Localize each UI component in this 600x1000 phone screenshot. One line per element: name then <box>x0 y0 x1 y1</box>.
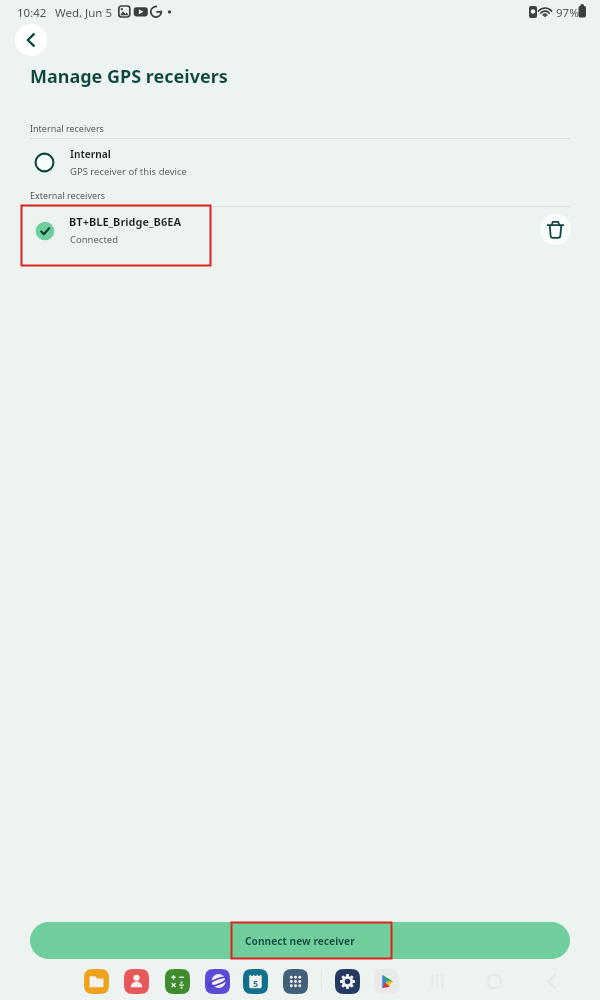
button[interactable]: Contacts <box>124 969 149 994</box>
staticText: External receivers <box>30 189 106 201</box>
button[interactable]: Delete <box>540 214 571 245</box>
staticText: Manage GPS receivers <box>30 64 228 89</box>
button[interactable]: Play Store <box>374 969 399 994</box>
staticText: Internal <box>70 147 111 161</box>
button[interactable]: My Files <box>84 969 109 994</box>
staticText: 97% <box>556 5 579 21</box>
staticText: 5 <box>253 977 259 989</box>
button[interactable]: Internal <box>0 142 600 188</box>
staticText: Internal receivers <box>30 122 104 134</box>
staticText: 10:42 <box>17 5 47 21</box>
button[interactable]: Apps <box>283 969 308 994</box>
button[interactable]: BT+BLE_Bridge_B6EA <box>0 209 600 259</box>
button[interactable]: Internet <box>205 969 230 994</box>
staticText: GPS receiver of this device <box>70 165 187 178</box>
button[interactable]: Connect new receiver <box>30 922 570 959</box>
staticText: BT+BLE_Bridge_B6EA <box>69 214 181 229</box>
button[interactable]: Calendar <box>243 969 268 994</box>
staticText: Connect new receiver <box>245 934 355 948</box>
staticText: Connected <box>70 233 119 246</box>
button[interactable]: Calculator <box>165 969 190 994</box>
button[interactable]: Settings <box>335 969 360 994</box>
button[interactable]: Back <box>15 24 47 56</box>
staticText: Wed, Jun 5 <box>55 5 113 21</box>
